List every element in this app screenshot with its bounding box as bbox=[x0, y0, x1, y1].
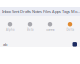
staticText: Alpha bbox=[6, 28, 14, 31]
staticText: Inbox Sent Drafts Notes Files Apps Tags … bbox=[2, 9, 80, 14]
staticText: Beta bbox=[27, 28, 33, 31]
staticText: Delta bbox=[66, 28, 73, 31]
staticText: ab bbox=[3, 42, 7, 47]
staticText: Gamma bbox=[46, 28, 54, 31]
